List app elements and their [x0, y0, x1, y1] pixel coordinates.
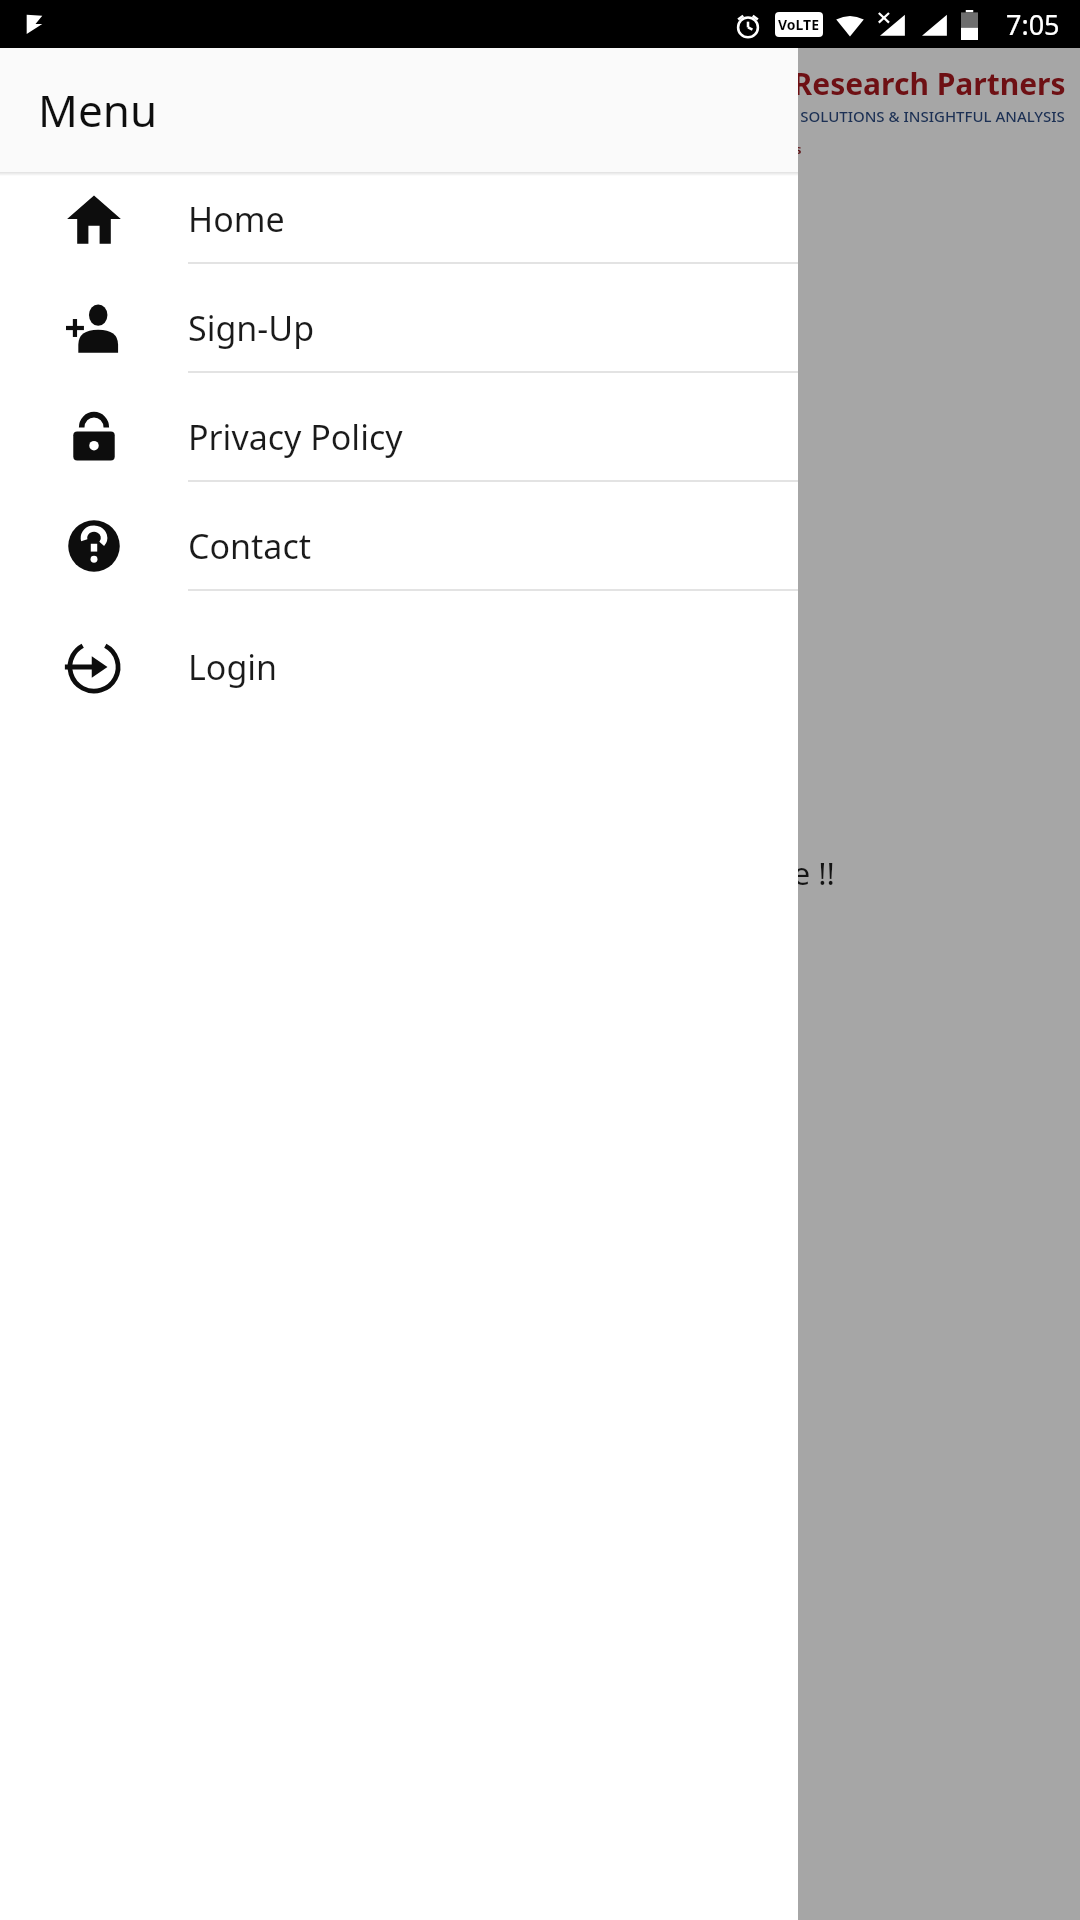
staticText: Menu [38, 80, 158, 140]
staticText: Login [188, 644, 278, 690]
staticText: Privacy Policy [188, 414, 403, 460]
other: Login [66, 639, 122, 695]
staticText: Your opinion matters everywhere !! Earni… [246, 809, 835, 894]
button[interactable]: Sign-Up [0, 285, 798, 394]
staticText: Contact [188, 523, 312, 569]
staticText: Home [188, 196, 285, 242]
other: Home [66, 191, 122, 247]
button[interactable]: Privacy Policy [0, 394, 798, 503]
staticText: 7:05 [1006, 6, 1060, 43]
other: Privacy Policy [66, 409, 122, 465]
staticText: ACCURATE SOLUTIONS & INSIGHTFUL ANALYSIS [722, 106, 1065, 126]
button[interactable]: Contact [0, 503, 798, 612]
button[interactable]: Login [0, 612, 798, 721]
button[interactable]: Home [0, 176, 798, 285]
other: Sign-Up [66, 300, 122, 356]
staticText: VoLTE [778, 15, 820, 34]
staticText: Asia Research Partners [722, 63, 1066, 104]
staticText: Sign-Up [188, 305, 315, 351]
staticText: P a r t n e r s [722, 140, 802, 158]
other: Contact [66, 518, 122, 574]
